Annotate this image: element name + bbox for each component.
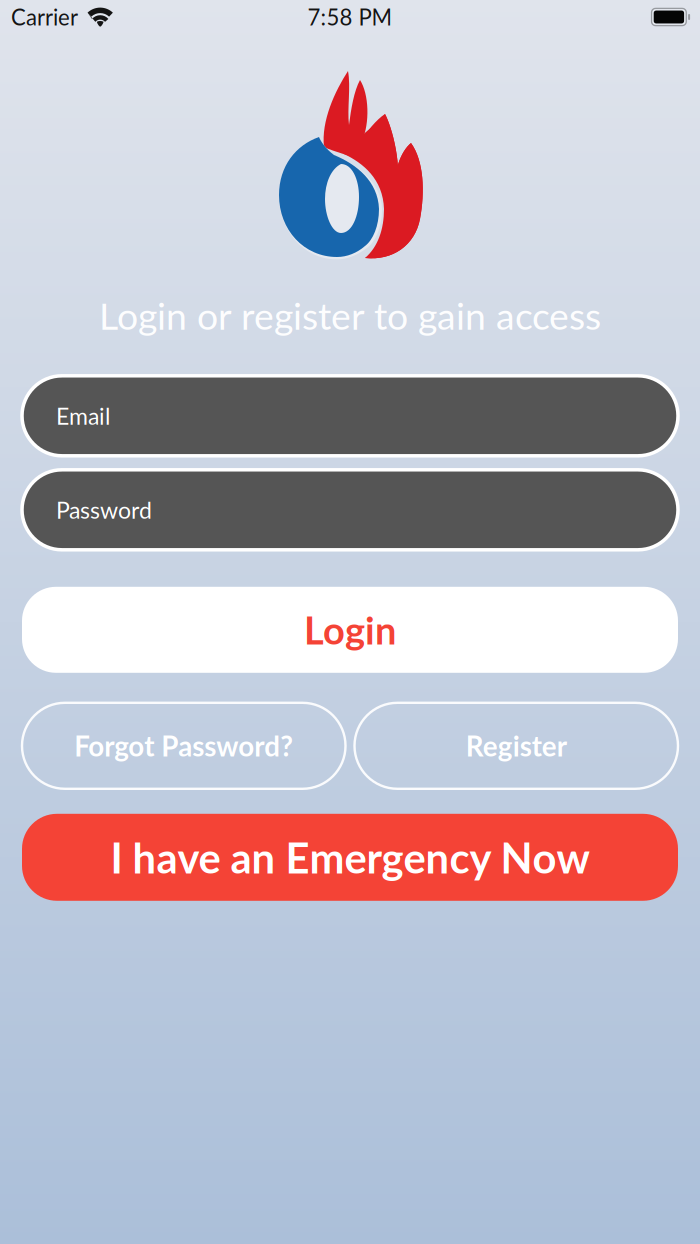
button[interactable]: Email: [22, 376, 678, 456]
staticText: Login or register to gain access: [99, 293, 601, 338]
button[interactable]: Register: [354, 703, 678, 789]
staticText: I have an Emergency Now: [110, 832, 589, 882]
button[interactable]: Login: [22, 587, 678, 673]
staticText: Carrier: [11, 4, 78, 30]
button[interactable]: Forgot Password?: [22, 703, 345, 789]
staticText: Email: [56, 402, 110, 430]
button[interactable]: I have an Emergency Now: [22, 814, 678, 901]
staticText: Forgot Password?: [74, 729, 293, 762]
staticText: Register: [466, 729, 567, 762]
button[interactable]: Password: [22, 470, 678, 550]
staticText: Password: [56, 496, 152, 524]
staticText: Login: [304, 607, 396, 653]
staticText: 7:58 PM: [307, 4, 392, 30]
